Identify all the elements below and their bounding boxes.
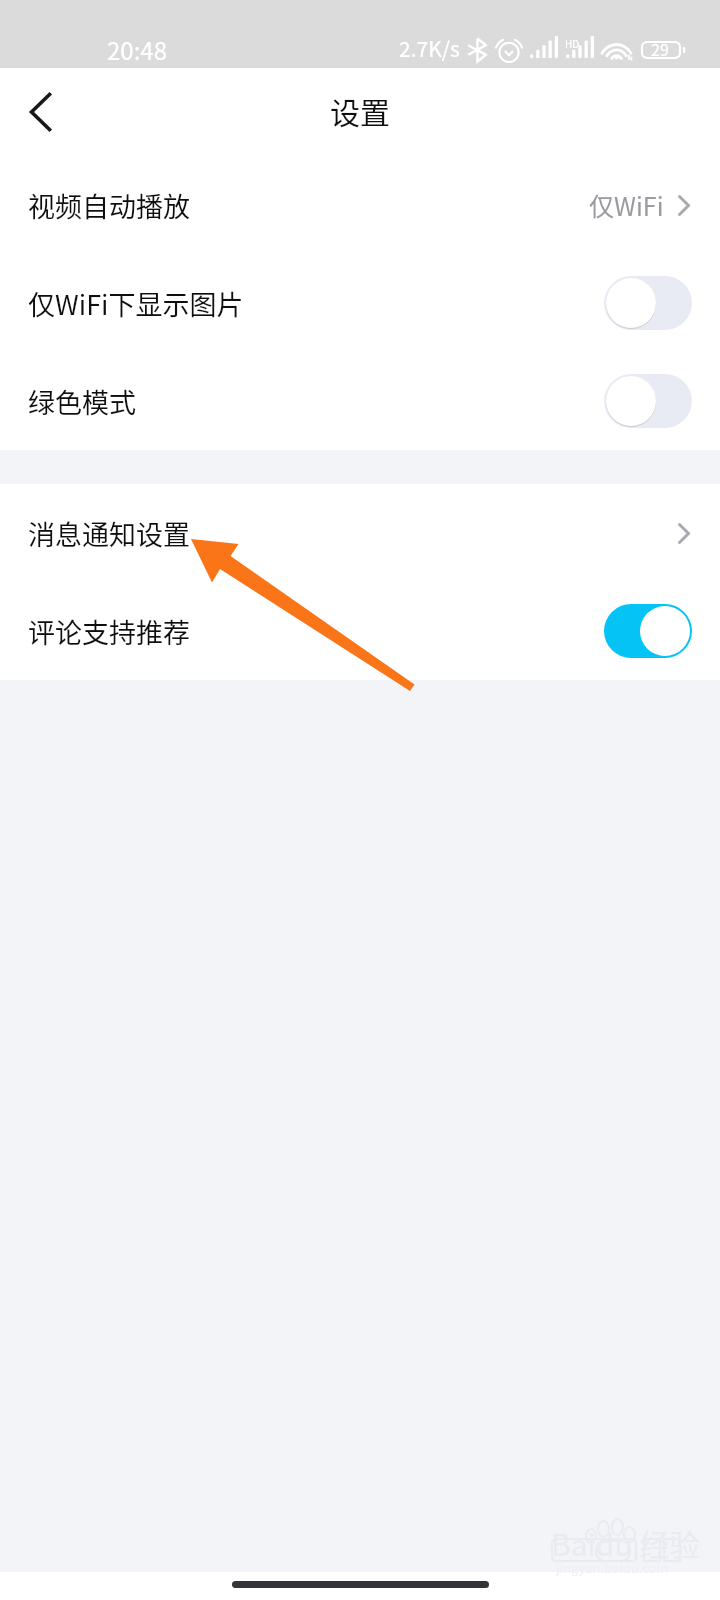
staticText: HD xyxy=(565,36,580,50)
button[interactable]: 仅WiFi下显示图片 xyxy=(0,254,720,352)
staticText: Baidu 经验 xyxy=(551,1521,700,1564)
staticText: 视频自动播放 xyxy=(28,186,190,225)
staticText: 20:48 xyxy=(107,32,167,67)
button[interactable]: Switch off xyxy=(604,374,692,428)
button[interactable]: 视频自动播放 xyxy=(0,156,720,254)
staticText: 29 xyxy=(651,37,669,60)
staticText: jingyan.baidu.com xyxy=(556,1558,669,1577)
staticText: 评论支持推荐 xyxy=(28,612,190,651)
button[interactable]: Switch off xyxy=(604,276,692,330)
button[interactable]: Switch on xyxy=(604,604,692,658)
staticText: 仅WiFi xyxy=(589,187,664,223)
staticText: 设置 xyxy=(330,89,390,132)
button[interactable]: Back xyxy=(0,68,80,156)
staticText: 绿色模式 xyxy=(28,382,136,421)
staticText: 消息通知设置 xyxy=(28,514,190,553)
button[interactable]: 消息通知设置 xyxy=(0,484,720,582)
staticText: 仅WiFi下显示图片 xyxy=(28,284,244,323)
button[interactable]: 评论支持推荐 xyxy=(0,582,720,680)
button[interactable]: 绿色模式 xyxy=(0,352,720,450)
staticText: 2.7K/s xyxy=(399,33,460,63)
